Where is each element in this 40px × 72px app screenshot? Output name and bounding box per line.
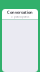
staticText: Conversation [7,10,33,15]
staticText: 5 participants [11,15,29,18]
